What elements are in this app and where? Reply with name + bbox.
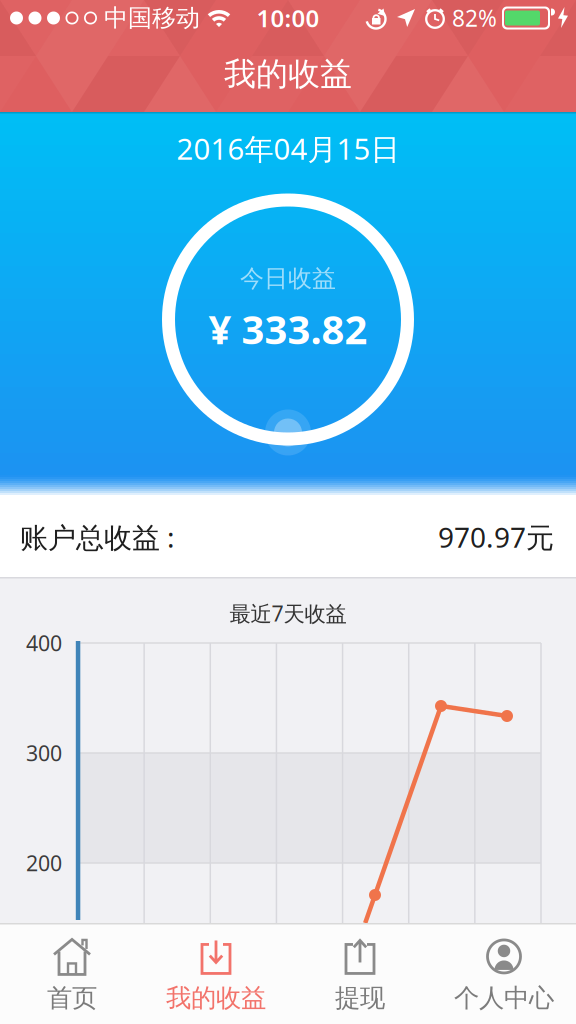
staticText: 首页 xyxy=(47,982,97,1013)
staticText: 82% xyxy=(452,3,497,33)
staticText: ¥ 333.82 xyxy=(208,302,367,355)
staticText: 今日收益 xyxy=(240,264,336,293)
staticText: 970.97元 xyxy=(438,518,554,556)
staticText: 我的收益 xyxy=(224,54,352,94)
button[interactable]: 个人中心 xyxy=(432,928,576,1022)
button[interactable]: 首页 xyxy=(0,928,144,1022)
staticText: 中国移动 xyxy=(104,3,200,33)
button[interactable]: 我的收益 xyxy=(144,928,288,1022)
staticText: 提现 xyxy=(335,982,385,1013)
staticText: 10:00 xyxy=(256,2,319,34)
staticText: 400 xyxy=(26,629,62,657)
staticText: 300 xyxy=(26,739,62,767)
staticText: 200 xyxy=(26,849,62,877)
button[interactable]: 提现 xyxy=(288,928,432,1022)
staticText: 最近7天收益 xyxy=(229,599,346,627)
staticText: 2016年04月15日 xyxy=(176,129,399,168)
staticText: 个人中心 xyxy=(454,982,554,1013)
staticText: 账户总收益 : xyxy=(20,518,175,556)
staticText: 我的收益 xyxy=(166,982,266,1013)
